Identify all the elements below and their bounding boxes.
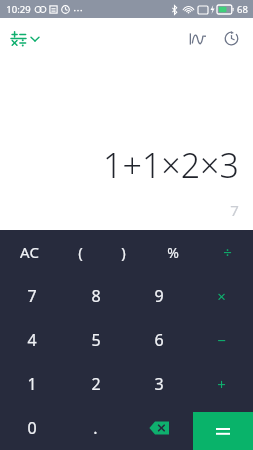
button[interactable]: + (190, 362, 253, 406)
staticText: 1+1×2×3 (103, 142, 239, 188)
button[interactable]: 7 (0, 274, 64, 318)
staticText: 10:29 (6, 3, 31, 16)
staticText: ÷ (223, 242, 232, 262)
button[interactable]: 1 (0, 362, 64, 406)
button[interactable]: ) (102, 230, 145, 274)
button[interactable]: 0 (0, 406, 64, 450)
button[interactable]: 4 (0, 318, 64, 362)
button[interactable]: Backspace (127, 406, 190, 450)
staticText: 1 (27, 373, 37, 395)
staticText: AC (20, 242, 39, 262)
button[interactable]: 2 (64, 362, 127, 406)
staticText: ) (121, 242, 126, 262)
staticText: − (217, 330, 226, 350)
button[interactable]: History (218, 25, 245, 52)
button[interactable]: × (190, 274, 253, 318)
button[interactable]: % (145, 230, 201, 274)
button[interactable]: ( (59, 230, 102, 274)
staticText: 68 (237, 3, 248, 16)
button[interactable]: − (190, 318, 253, 362)
staticText: 0 (27, 417, 37, 439)
staticText: % (167, 243, 179, 262)
button[interactable]: Graph (183, 26, 212, 52)
staticText: 7 (230, 200, 239, 220)
staticText: 3 (154, 373, 164, 395)
button[interactable]: . (64, 406, 127, 450)
button[interactable]: 5 (64, 318, 127, 362)
staticText: 9 (154, 285, 164, 307)
button[interactable]: AC (0, 230, 59, 274)
staticText: ( (78, 242, 83, 262)
staticText: × (217, 286, 226, 306)
staticText: 2 (91, 373, 101, 395)
button[interactable]: ÷ (201, 230, 253, 274)
button[interactable]: Calculator mode (6, 26, 43, 51)
staticText: 8 (91, 285, 101, 307)
staticText: 4 (27, 329, 37, 351)
staticText: + (217, 374, 226, 394)
staticText: 6 (154, 329, 164, 351)
staticText: 5 (91, 329, 101, 351)
staticText: 7 (27, 285, 37, 307)
staticText: . (93, 417, 98, 439)
button[interactable]: 8 (64, 274, 127, 318)
button[interactable]: 3 (127, 362, 190, 406)
button[interactable] (193, 412, 253, 450)
button[interactable]: 6 (127, 318, 190, 362)
button[interactable]: 9 (127, 274, 190, 318)
